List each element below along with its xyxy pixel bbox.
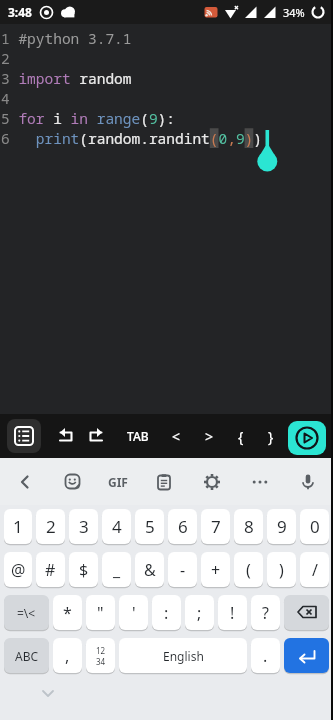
button[interactable]: $ xyxy=(69,552,98,587)
staticText: 0 xyxy=(310,515,320,538)
button[interactable]: 0 xyxy=(300,509,329,544)
button[interactable] xyxy=(10,467,40,497)
staticText: ' xyxy=(132,602,136,624)
staticText: 1 #python 3.7.1 xyxy=(1,28,132,48)
staticText: . xyxy=(263,645,268,667)
staticText: 34% xyxy=(283,5,305,20)
button[interactable]: 8 xyxy=(234,509,263,544)
staticText: 2 xyxy=(46,515,56,538)
button[interactable]: 2 xyxy=(36,509,65,544)
button[interactable]: ' xyxy=(119,595,148,630)
button[interactable]: ! xyxy=(218,595,247,630)
staticText: 34 xyxy=(96,656,106,667)
staticText: 4 xyxy=(112,515,122,538)
button[interactable]: * xyxy=(53,595,82,630)
button[interactable]: 12 xyxy=(86,638,115,673)
button[interactable] xyxy=(81,422,109,450)
button[interactable]: TAB xyxy=(123,424,153,448)
button[interactable] xyxy=(284,595,329,630)
button[interactable] xyxy=(245,467,275,497)
button[interactable]: - xyxy=(168,552,197,587)
button[interactable]: ABC xyxy=(4,638,49,673)
staticText: ; xyxy=(197,602,202,624)
staticText: 3 xyxy=(79,515,89,538)
button[interactable]: . xyxy=(251,638,280,673)
staticText: GIF xyxy=(108,474,128,490)
button[interactable]: } xyxy=(264,423,278,450)
button[interactable] xyxy=(58,467,88,497)
button[interactable]: ; xyxy=(185,595,214,630)
staticText: > xyxy=(205,427,214,446)
button[interactable]: > xyxy=(201,423,218,450)
button[interactable]: & xyxy=(135,552,164,587)
button[interactable]: " xyxy=(86,595,115,630)
staticText: 6 print(random.randint(0,9)) xyxy=(1,128,262,148)
staticText: 9 xyxy=(277,515,287,538)
staticText: 2 xyxy=(1,48,19,68)
staticText: 5 for i in range(9): xyxy=(1,108,175,128)
button[interactable]: 6 xyxy=(168,509,197,544)
staticText: ( xyxy=(246,559,251,581)
staticText: TAB xyxy=(127,428,149,444)
staticText: =\< xyxy=(17,605,36,621)
staticText: 8 xyxy=(244,515,254,538)
staticText: < xyxy=(172,427,181,446)
button[interactable]: / xyxy=(300,552,329,587)
button[interactable]: =\< xyxy=(4,595,49,630)
staticText: / xyxy=(312,559,318,581)
button[interactable] xyxy=(293,467,323,497)
button[interactable]: ) xyxy=(267,552,296,587)
staticText: $ xyxy=(79,559,89,581)
staticText: 12 xyxy=(96,645,106,656)
staticText: " xyxy=(97,602,104,624)
button[interactable]: 1 xyxy=(4,509,32,544)
staticText: # xyxy=(45,559,56,581)
button[interactable] xyxy=(284,638,329,673)
staticText: ABC xyxy=(15,648,39,664)
button[interactable]: 4 xyxy=(102,509,131,544)
staticText: : xyxy=(164,602,169,624)
button[interactable]: _ xyxy=(102,552,131,587)
button[interactable] xyxy=(53,422,81,450)
staticText: 5 xyxy=(145,515,155,538)
staticText: ) xyxy=(279,559,284,581)
button[interactable] xyxy=(288,421,326,455)
button[interactable]: 3 xyxy=(69,509,98,544)
staticText: ! xyxy=(230,602,235,624)
staticText: { xyxy=(238,427,244,446)
button[interactable] xyxy=(149,467,179,497)
button[interactable]: ? xyxy=(251,595,280,630)
button[interactable]: GIF xyxy=(106,472,130,492)
staticText: 1 xyxy=(13,515,23,538)
staticText: & xyxy=(144,559,156,581)
button[interactable] xyxy=(7,419,41,453)
button[interactable]: + xyxy=(201,552,230,587)
staticText: , xyxy=(65,645,70,667)
staticText: 4 xyxy=(1,88,19,108)
staticText: 3 import random xyxy=(1,68,132,88)
staticText: _ xyxy=(113,559,121,581)
button[interactable]: @ xyxy=(4,552,32,587)
staticText: - xyxy=(180,559,186,581)
staticText: * xyxy=(63,602,72,624)
button[interactable]: English xyxy=(119,638,247,673)
staticText: 7 xyxy=(211,515,221,538)
staticText: ? xyxy=(262,602,269,624)
staticText: English xyxy=(163,648,204,664)
button[interactable]: { xyxy=(234,423,248,450)
button[interactable]: , xyxy=(53,638,82,673)
button[interactable]: 9 xyxy=(267,509,296,544)
staticText: 3:48 xyxy=(8,4,32,20)
button[interactable]: : xyxy=(152,595,181,630)
staticText: + xyxy=(211,559,221,581)
staticText: @ xyxy=(11,559,26,581)
button[interactable]: < xyxy=(168,423,185,450)
button[interactable]: 7 xyxy=(201,509,230,544)
button[interactable]: ( xyxy=(234,552,263,587)
button[interactable]: # xyxy=(36,552,65,587)
staticText: } xyxy=(268,427,274,446)
staticText: 6 xyxy=(178,515,188,538)
button[interactable]: 5 xyxy=(135,509,164,544)
button[interactable] xyxy=(197,467,227,497)
